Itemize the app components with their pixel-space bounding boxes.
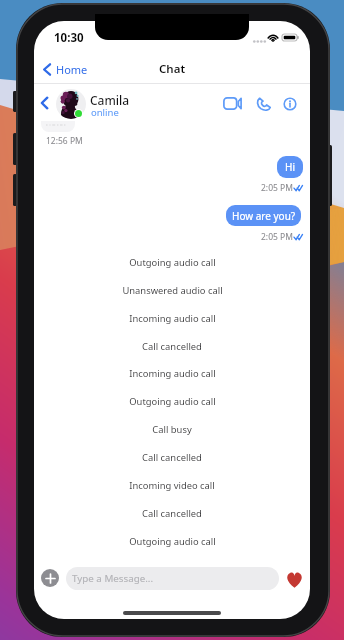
button[interactable]: Add attachment (41, 569, 59, 587)
button[interactable]: Outgoing audio call (34, 255, 310, 269)
staticText: 2:05 PM (261, 182, 293, 194)
staticText: Home (56, 62, 88, 77)
staticText: 2:05 PM (261, 231, 293, 243)
staticText: Outgoing audio call (129, 395, 216, 408)
staticText: Incoming video call (129, 479, 215, 492)
button[interactable]: Call cancelled (34, 339, 310, 353)
staticText: Outgoing audio call (129, 535, 216, 548)
button[interactable]: Incoming video call (34, 478, 310, 492)
button[interactable]: Outgoing audio call (34, 534, 310, 548)
button[interactable]: Call busy (34, 422, 310, 436)
button[interactable]: Outgoing audio call (34, 394, 310, 408)
button[interactable]: How are you? (226, 205, 301, 226)
staticText: Call cancelled (142, 451, 202, 464)
button[interactable]: Incoming audio call (34, 311, 310, 325)
staticText: Incoming audio call (129, 312, 216, 325)
staticText: online (91, 106, 119, 119)
button[interactable]: Home (39, 58, 92, 81)
staticText: Incoming audio call (129, 367, 216, 380)
staticText: Camila (90, 92, 130, 108)
button[interactable]: Video call (218, 91, 247, 116)
staticText: Call cancelled (142, 340, 202, 353)
staticText: Call cancelled (142, 507, 202, 520)
button[interactable]: Call cancelled (34, 506, 310, 520)
button[interactable]: Incoming audio call (34, 366, 310, 380)
button[interactable]: Contact info (278, 91, 301, 116)
button[interactable]: Type a Message... (66, 567, 279, 590)
staticText: Unanswered audio call (122, 284, 223, 297)
staticText: How are you? (232, 209, 296, 223)
staticText: Hi (285, 160, 295, 174)
button[interactable]: Send heart (284, 569, 305, 590)
staticText: 12:56 PM (46, 135, 83, 147)
staticText: Outgoing audio call (129, 256, 216, 269)
button[interactable]: Unanswered audio call (34, 283, 310, 297)
staticText: Call busy (152, 423, 192, 436)
button[interactable]: Back (34, 90, 55, 115)
button[interactable]: Hi (277, 156, 303, 178)
staticText: Type a Message... (72, 572, 154, 585)
staticText: 10:30 (54, 30, 84, 46)
staticText: Chat (159, 61, 186, 77)
button[interactable]: Call cancelled (34, 450, 310, 464)
button[interactable]: Voice call (251, 91, 275, 116)
